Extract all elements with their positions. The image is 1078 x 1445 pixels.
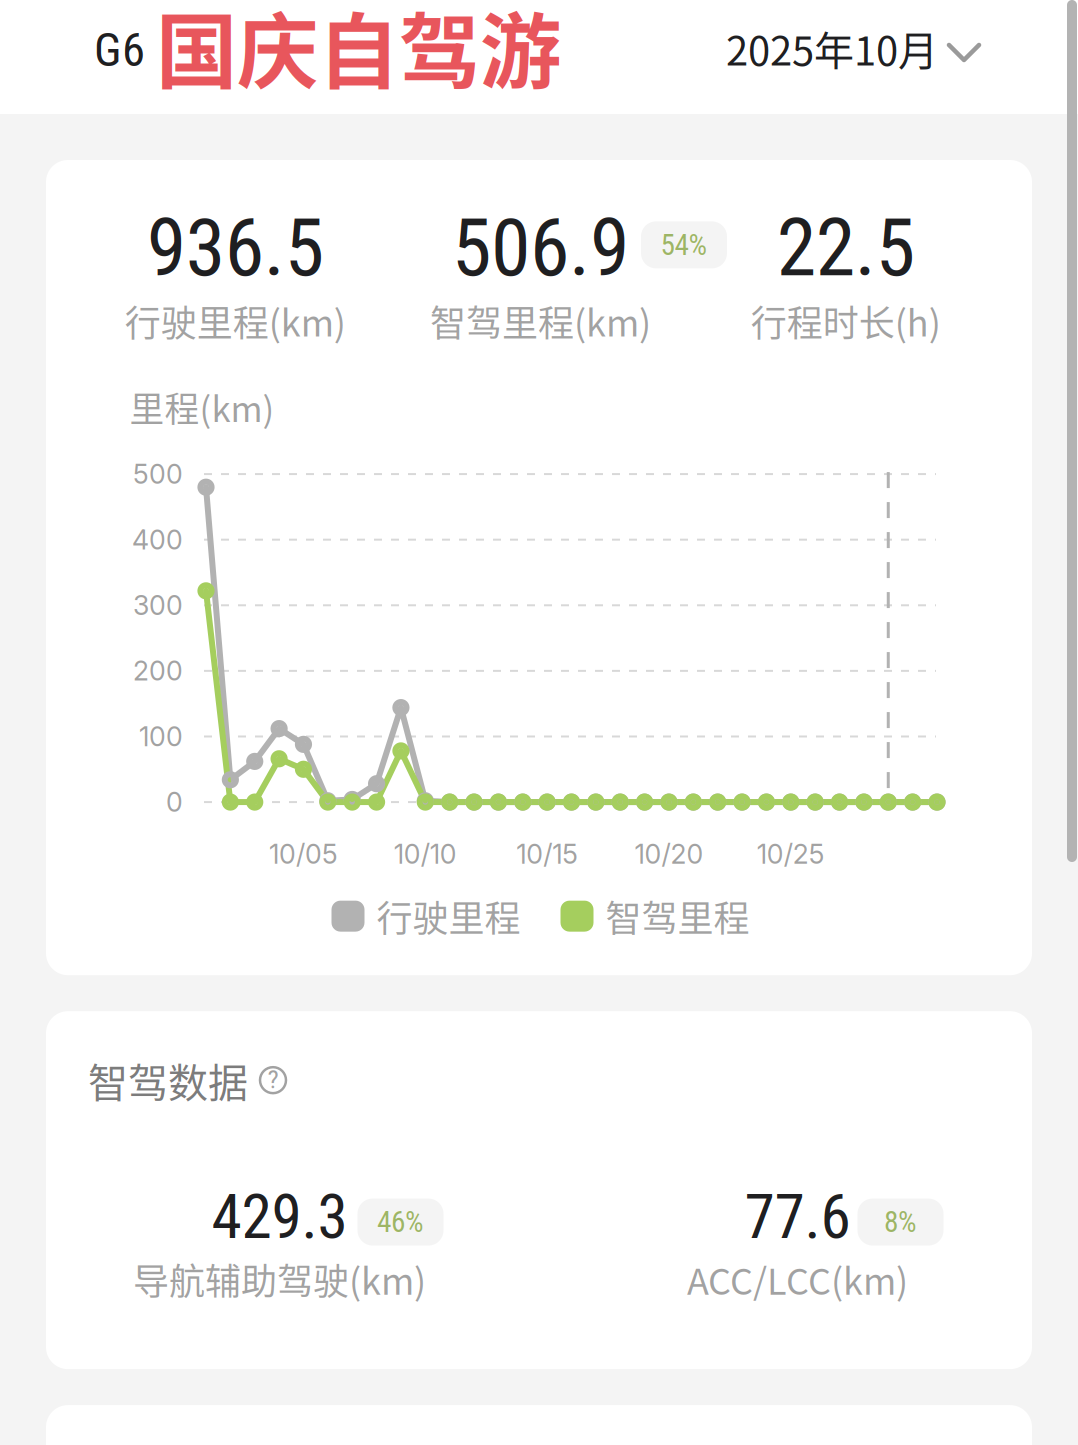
staticText: 936.5 [147,201,324,295]
staticText: 10/25 [757,838,825,870]
staticText: 智驾里程(km) [430,295,651,347]
staticText: 500 [133,458,183,490]
staticText: 10/10 [394,838,457,870]
staticText: 8% [884,1205,917,1239]
staticText: 国庆自驾游 [156,0,561,99]
staticText: 200 [133,655,183,687]
staticText: ? [267,1063,278,1095]
staticText: 智驾里程 [605,890,749,942]
staticText: 行程时长(h) [751,295,941,347]
staticText: 100 [139,720,183,753]
staticText: 22.5 [777,201,915,295]
button[interactable]: 智驾数据说明 [256,1063,290,1097]
staticText: 10/05 [269,838,338,870]
staticText: 国庆自驾游 [160,0,565,101]
staticText: 77.6 [744,1181,850,1253]
button[interactable]: 2025年10月 [726,28,982,86]
staticText: 400 [132,523,183,556]
staticText: 10/15 [516,838,578,870]
staticText: 导航辅助驾驶(km) [133,1253,426,1305]
staticText: 46% [377,1205,424,1239]
staticText: 2025年10月 [726,19,938,77]
staticText: 国庆自驾游 [160,0,565,109]
staticText: 429.3 [211,1181,347,1253]
staticText: ACC/LCC(km) [687,1253,908,1305]
staticText: 智驾数据 [88,1051,248,1109]
staticText: 国庆自驾游 [152,0,557,109]
staticText: 54% [660,228,707,262]
staticText: 300 [133,589,183,621]
staticText: 国庆自驾游 [162,0,567,105]
staticText: G6 [94,23,145,77]
staticText: 国庆自驾游 [156,0,561,111]
staticText: 国庆自驾游 [152,0,557,101]
staticText: 里程(km) [129,382,274,432]
staticText: 行驶里程(km) [125,295,346,347]
staticText: 0 [166,786,183,818]
staticText: 国庆自驾游 [150,0,555,105]
staticText: 506.9 [452,201,629,295]
staticText: 行驶里程 [376,890,520,942]
staticText: 10/20 [634,838,703,870]
staticText: 国庆自驾游 [156,0,561,105]
